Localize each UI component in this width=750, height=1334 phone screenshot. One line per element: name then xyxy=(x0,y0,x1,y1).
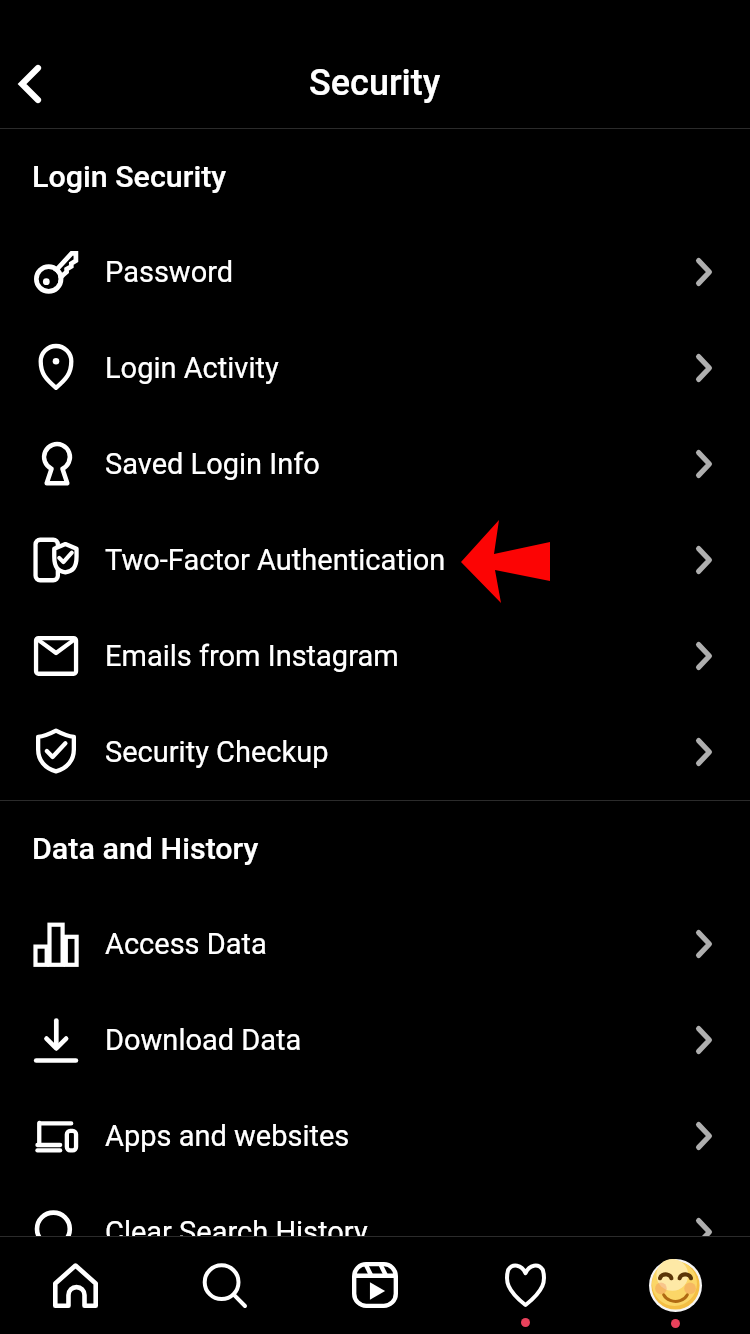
staticText: Password xyxy=(105,255,234,289)
staticText: Clear Search History xyxy=(105,1215,368,1249)
button[interactable]: Apps and websites xyxy=(0,1088,750,1184)
staticText: Two-Factor Authentication xyxy=(105,543,446,577)
staticText: Security Checkup xyxy=(105,735,329,769)
button[interactable]: Home xyxy=(0,1236,150,1334)
staticText: Apps and websites xyxy=(105,1119,350,1153)
staticText: Login Security xyxy=(32,159,227,195)
button[interactable]: Login Activity xyxy=(0,320,750,416)
button[interactable]: Clear Search History xyxy=(0,1184,750,1280)
staticText: Data and History xyxy=(32,831,259,867)
staticText: Access Data xyxy=(105,927,267,961)
button[interactable]: Back xyxy=(0,54,60,114)
button[interactable]: Access Data xyxy=(0,896,750,992)
staticText: Emails from Instagram xyxy=(105,639,399,673)
staticText: Download Data xyxy=(105,1023,302,1057)
button[interactable]: Activity xyxy=(450,1236,600,1334)
button[interactable]: Profile xyxy=(600,1236,750,1334)
staticText: Login Activity xyxy=(105,351,279,385)
button[interactable]: Password xyxy=(0,224,750,320)
button[interactable]: Reels xyxy=(300,1236,450,1334)
button[interactable]: Download Data xyxy=(0,992,750,1088)
button[interactable]: Two-Factor Authentication xyxy=(0,512,750,608)
button[interactable]: Emails from Instagram xyxy=(0,608,750,704)
button[interactable]: Security Checkup xyxy=(0,704,750,800)
staticText: Saved Login Info xyxy=(105,447,320,481)
button[interactable]: Saved Login Info xyxy=(0,416,750,512)
staticText: Security xyxy=(309,62,441,104)
button[interactable]: Search xyxy=(150,1236,300,1334)
